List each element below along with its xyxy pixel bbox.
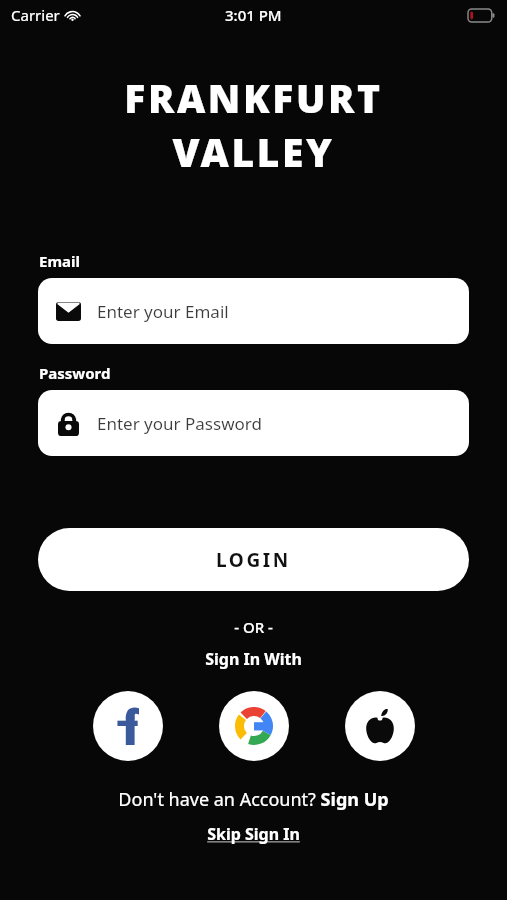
button[interactable]: Sign in with Facebook xyxy=(93,691,163,761)
staticText: FRANKFURT xyxy=(124,71,383,124)
staticText: LOGIN xyxy=(216,547,291,573)
staticText: Enter your Email xyxy=(97,300,229,323)
staticText: Carrier xyxy=(11,5,60,25)
button[interactable]: Enter your Password xyxy=(38,390,469,456)
button[interactable]: Skip Sign In xyxy=(0,823,507,845)
button[interactable]: Don't have an Account? Sign Up xyxy=(0,787,507,812)
staticText: Password xyxy=(39,363,111,383)
button[interactable]: Enter your Email xyxy=(38,278,469,344)
staticText: 3:01 PM xyxy=(225,5,282,25)
staticText: Skip Sign In xyxy=(207,823,300,845)
staticText: VALLEY xyxy=(172,125,335,178)
button[interactable]: Sign in with Google xyxy=(219,691,289,761)
staticText: - OR - xyxy=(0,617,507,637)
staticText: Don't have an Account? Sign Up xyxy=(118,787,389,812)
button[interactable]: Sign in with Apple xyxy=(345,691,415,761)
button[interactable]: LOGIN xyxy=(38,528,469,591)
staticText: Sign In With xyxy=(0,648,507,670)
staticText: Email xyxy=(39,251,80,271)
staticText: Enter your Password xyxy=(97,412,262,435)
